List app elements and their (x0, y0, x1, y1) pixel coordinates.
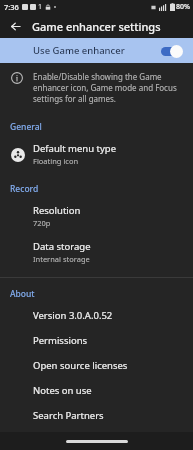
staticText: Record (10, 183, 39, 195)
button[interactable]: Permissions (0, 328, 193, 353)
staticText: Open source licenses (33, 359, 128, 372)
staticText: Game enhancer settings (32, 19, 161, 34)
button[interactable]: Notes on use (0, 378, 193, 403)
other: Use Game enhancer toggle (161, 44, 183, 58)
staticText: Version 3.0.A.0.52 (33, 309, 113, 322)
staticText: Enable/Disable showing the Game enhancer… (33, 71, 181, 104)
staticText: About (10, 288, 35, 300)
button[interactable]: Data storage (0, 234, 193, 270)
staticText: Floating icon (33, 156, 79, 166)
staticText: 1 (38, 2, 43, 12)
button[interactable]: Search Partners (0, 403, 193, 428)
staticText: Internal storage (33, 254, 90, 264)
staticText: 7:36 (4, 2, 19, 12)
button[interactable]: Version 3.0.A.0.52 (0, 303, 193, 328)
staticText: Permissions (33, 334, 88, 347)
staticText: Search Partners (33, 409, 104, 422)
staticText: General (10, 121, 42, 133)
staticText: Notes on use (33, 384, 92, 397)
staticText: Use Game enhancer (33, 44, 161, 57)
button[interactable]: Back (5, 16, 25, 36)
staticText: Data storage (33, 240, 91, 253)
button[interactable]: Default menu type (0, 136, 193, 172)
button[interactable]: Resolution (0, 198, 193, 234)
staticText: Default menu type (33, 142, 117, 155)
button[interactable]: Use Game enhancer (0, 38, 193, 63)
button[interactable]: Open source licenses (0, 353, 193, 378)
staticText: 720p (33, 218, 51, 228)
staticText: 80% (176, 2, 190, 12)
staticText: Resolution (33, 204, 81, 217)
